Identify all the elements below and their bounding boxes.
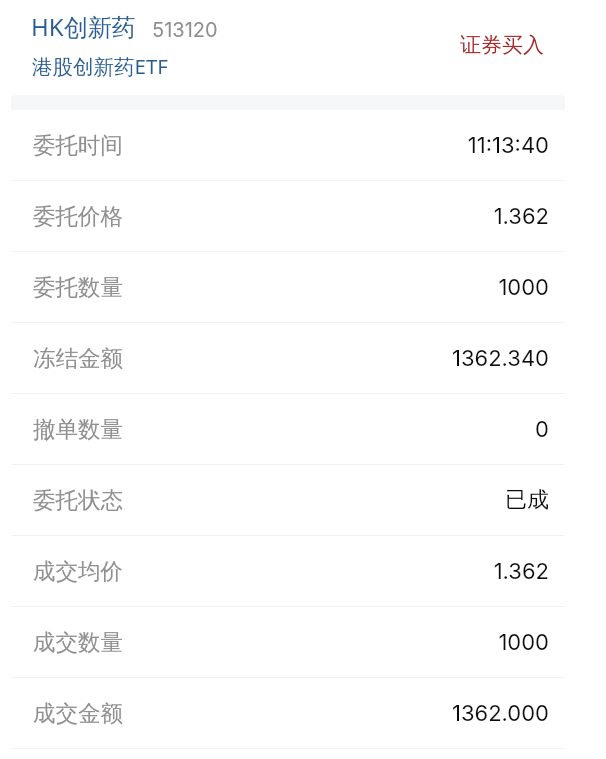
staticText: HK创新药 [31,10,136,43]
button[interactable]: 撤单数量 [0,394,606,464]
button[interactable]: HK创新药 [31,10,218,80]
button[interactable]: 证券买入 [452,24,552,66]
staticText: 1000 [498,629,549,656]
staticText: 成交均价 [33,557,123,585]
button[interactable]: 成交金额 [0,678,606,748]
button[interactable]: 成交数量 [0,607,606,677]
staticText: 11:13:40 [467,132,549,159]
staticText: 委托价格 [33,202,123,230]
staticText: 撤单数量 [33,415,123,443]
button[interactable]: 成交均价 [0,536,606,606]
staticText: 委托状态 [33,486,123,514]
staticText: 1362.340 [451,345,549,372]
staticText: 成交金额 [33,699,123,727]
staticText: 1362.000 [451,700,549,727]
button[interactable]: 委托数量 [0,252,606,322]
staticText: 委托时间 [33,131,123,159]
staticText: 冻结金额 [33,344,123,372]
staticText: 成交数量 [33,628,123,656]
staticText: 已成 [505,486,549,514]
staticText: 证券买入 [460,32,544,58]
staticText: 1.362 [493,558,549,585]
button[interactable]: 委托时间 [0,110,606,180]
staticText: 委托数量 [33,273,123,301]
staticText: 0 [535,416,549,443]
button[interactable]: 冻结金额 [0,323,606,393]
staticText: 港股创新药ETF [32,52,168,80]
button[interactable]: 委托价格 [0,181,606,251]
button[interactable]: 委托状态 [0,465,606,535]
staticText: 1.362 [493,203,549,230]
staticText: 513120 [152,18,218,42]
staticText: 1000 [498,274,549,301]
